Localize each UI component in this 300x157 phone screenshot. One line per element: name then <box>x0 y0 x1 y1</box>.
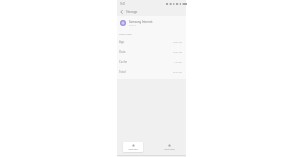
staticText: 1.31 MB <box>174 61 182 64</box>
staticText: Clear data <box>128 148 138 151</box>
staticText: Space used <box>119 32 132 35</box>
button[interactable]: Back <box>118 9 124 15</box>
staticText: Data <box>119 50 126 54</box>
staticText: Clear cache <box>164 148 175 151</box>
button[interactable]: Clear cache <box>159 142 179 152</box>
button[interactable]: Data <box>117 47 186 57</box>
staticText: App <box>119 40 125 44</box>
staticText: 67.44 MB <box>173 71 182 74</box>
button[interactable]: App <box>117 37 186 47</box>
staticText: 9:41 <box>120 2 126 6</box>
staticText: 45.29 MB <box>173 41 182 44</box>
staticText: 25.0.1.4 <box>129 24 136 27</box>
staticText: Cache <box>119 60 128 64</box>
button[interactable]: Cache <box>117 57 186 67</box>
button[interactable]: Clear data <box>123 142 143 152</box>
staticText: Samsung Internet <box>129 20 153 24</box>
staticText: Storage <box>126 10 138 14</box>
staticText: 20.84 MB <box>173 51 182 54</box>
staticText: Total <box>119 70 126 74</box>
button[interactable]: Total <box>117 67 186 77</box>
